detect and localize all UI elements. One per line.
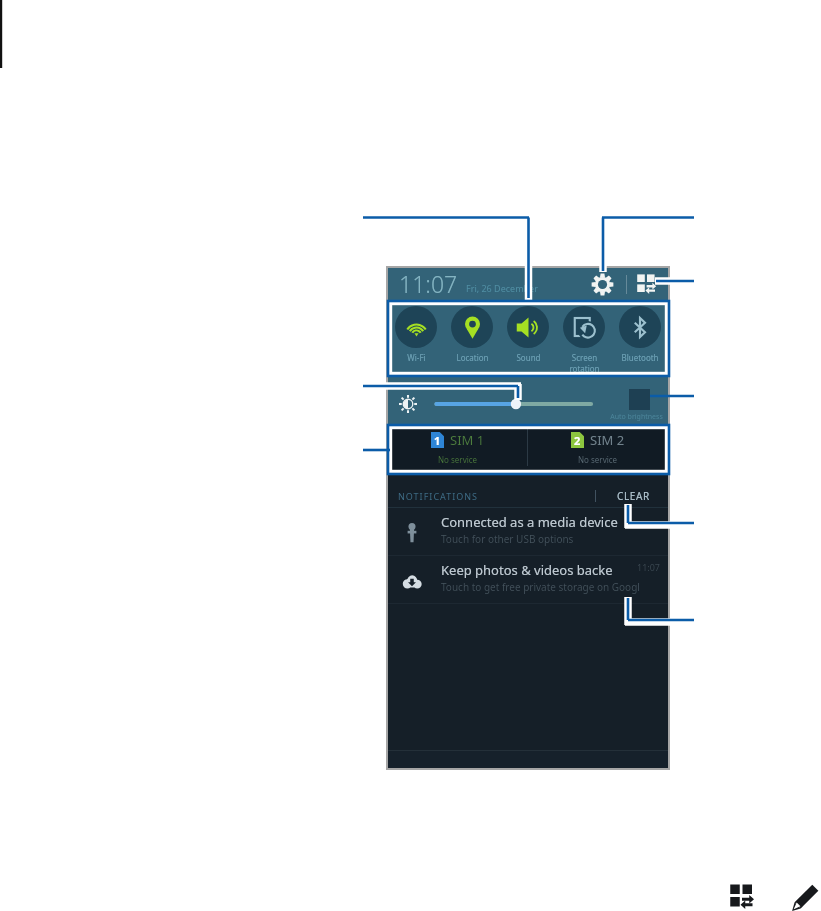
staticText: Keep photos & videos backe — [441, 561, 613, 579]
button[interactable]: Edit — [794, 883, 820, 909]
staticText: CLEAR — [617, 489, 650, 503]
staticText: Location — [456, 352, 489, 363]
button[interactable]: Connected as a media device — [388, 508, 668, 556]
staticText: No service — [578, 454, 618, 465]
staticText: Sound — [516, 352, 541, 363]
button[interactable]: Wi-Fi — [388, 300, 444, 373]
staticText: NOTIFICATIONS — [398, 490, 479, 502]
button[interactable]: 2 — [528, 424, 668, 469]
staticText: 2 — [574, 433, 581, 448]
staticText: SIM 2 — [590, 431, 625, 449]
button[interactable]: Settings — [588, 270, 616, 298]
staticText: No service — [438, 454, 478, 465]
staticText: Wi-Fi — [407, 352, 426, 363]
button[interactable]: Keep photos & videos backe — [388, 556, 668, 604]
staticText: Auto brightness — [610, 412, 663, 422]
staticText: 11:07 — [399, 268, 458, 299]
button[interactable]: Quick settings — [730, 884, 755, 909]
button[interactable]: Bluetooth — [612, 300, 668, 373]
button[interactable]: Edit quick settings — [635, 272, 659, 296]
staticText: Touch to get free private storage on Goo… — [441, 580, 640, 594]
button[interactable]: Location — [444, 300, 500, 373]
button[interactable]: Screen rotation — [556, 300, 612, 373]
staticText: Fri, 26 December — [466, 282, 538, 294]
staticText: 11:07 — [637, 561, 661, 573]
button[interactable]: CLEAR — [617, 489, 650, 503]
staticText: Touch for other USB options — [441, 532, 574, 546]
staticText: Bluetooth — [621, 352, 659, 363]
button[interactable]: 1 — [388, 424, 527, 469]
button[interactable] — [434, 394, 594, 414]
staticText: SIM 1 — [450, 431, 485, 449]
staticText: 1 — [434, 433, 441, 448]
staticText: Screen rotation — [569, 352, 600, 373]
staticText: Connected as a media device — [441, 513, 618, 531]
button[interactable]: Sound — [500, 300, 556, 373]
